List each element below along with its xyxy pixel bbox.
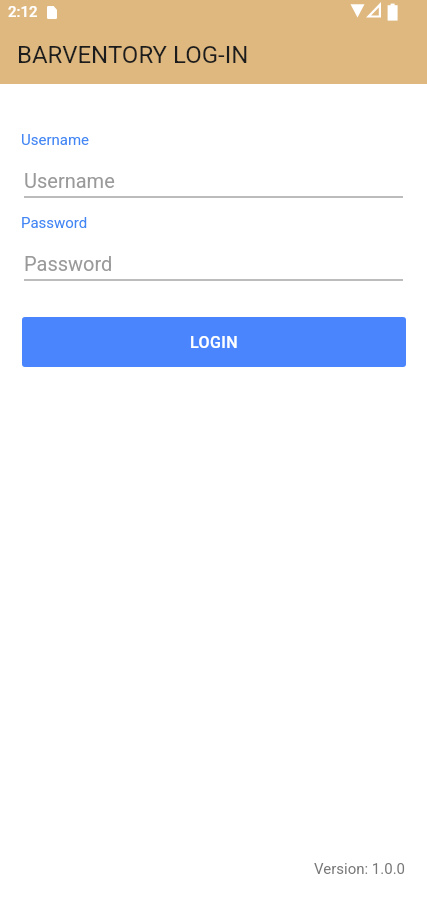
button[interactable]: Password: [24, 252, 403, 281]
staticText: 2:12: [8, 3, 38, 21]
staticText: Password: [21, 214, 88, 232]
staticText: Username: [21, 131, 90, 149]
staticText: LOGIN: [190, 333, 238, 352]
other: Notification: [47, 6, 57, 19]
staticText: Password: [24, 252, 113, 275]
button[interactable]: LOGIN: [22, 317, 406, 367]
staticText: Version: 1.0.0: [314, 860, 406, 878]
button[interactable]: Username: [24, 169, 403, 198]
staticText: Username: [24, 169, 115, 192]
other: Wi-Fi, mobile signal off, battery: [351, 0, 398, 24]
staticText: BARVENTORY LOG-IN: [17, 41, 249, 69]
